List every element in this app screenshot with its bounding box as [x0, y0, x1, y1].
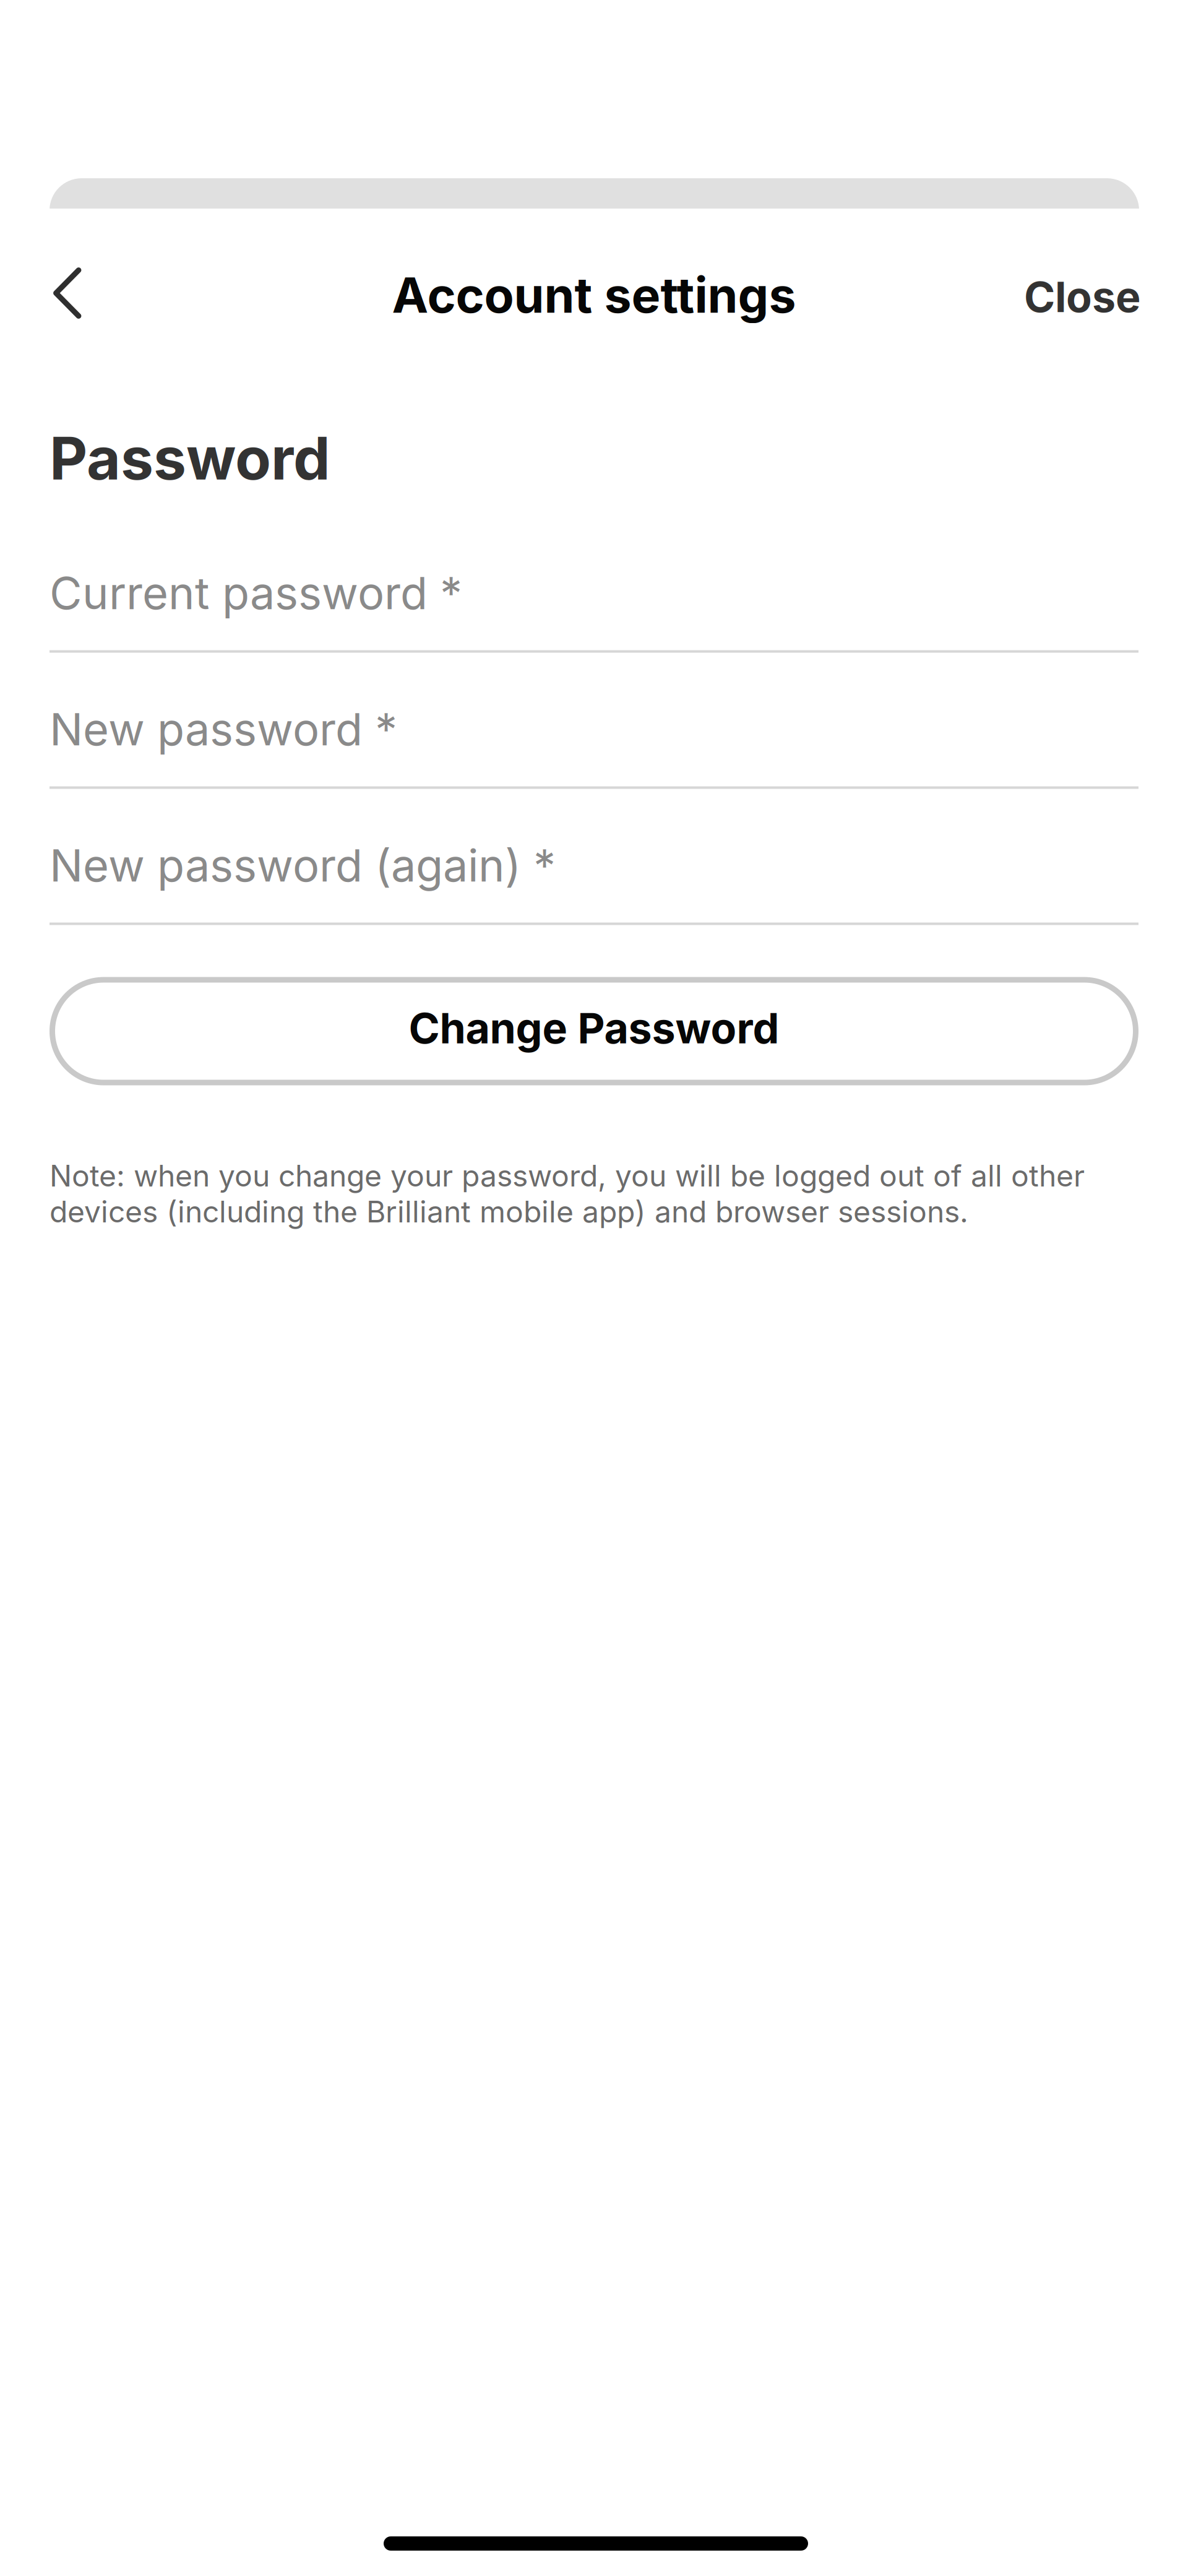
staticText: New password * — [49, 702, 397, 756]
button[interactable]: New password (again) * — [49, 789, 1138, 925]
button[interactable]: New password * — [49, 653, 1138, 789]
staticText: Password — [49, 423, 330, 494]
staticText: Note: when you change your password, you… — [49, 1158, 1085, 1230]
button[interactable]: Change Password — [49, 977, 1138, 1085]
staticText: New password (again) * — [49, 838, 556, 892]
staticText: Close — [1024, 271, 1141, 322]
staticText: Account settings — [392, 266, 796, 324]
staticText: Current password * — [49, 566, 462, 620]
button[interactable]: Current password * — [49, 516, 1138, 653]
button[interactable]: Back — [29, 255, 105, 331]
staticText: Change Password — [409, 1003, 779, 1054]
button[interactable]: Close — [980, 259, 1141, 335]
